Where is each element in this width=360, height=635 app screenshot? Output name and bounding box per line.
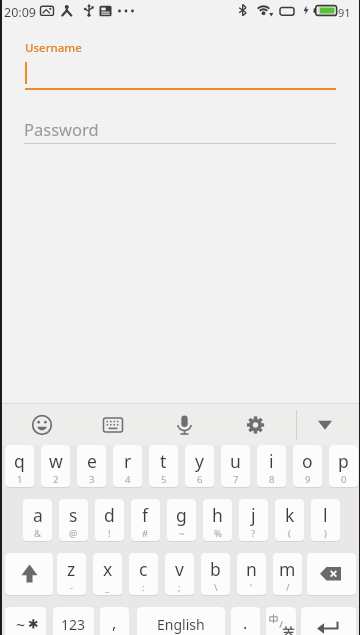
staticText: 8: [269, 473, 275, 486]
staticText: w: [49, 449, 63, 473]
button[interactable]: g: [167, 499, 196, 542]
staticText: ,: [112, 612, 117, 634]
button[interactable]: b: [201, 553, 230, 596]
staticText: ?: [251, 527, 256, 540]
staticText: 91: [338, 5, 351, 20]
staticText: 3: [89, 473, 95, 486]
staticText: b: [210, 557, 221, 581]
staticText: (: [288, 527, 291, 540]
staticText: v: [175, 557, 184, 581]
staticText: r: [124, 449, 132, 473]
staticText: q: [14, 449, 25, 473]
button[interactable]: [307, 553, 356, 596]
staticText: l: [323, 503, 328, 527]
staticText: g: [176, 503, 187, 527]
button[interactable]: 123: [53, 607, 94, 635]
button[interactable]: x: [93, 553, 122, 596]
staticText: n: [246, 557, 257, 581]
button[interactable]: o: [293, 445, 322, 488]
button[interactable]: [5, 553, 53, 596]
button[interactable]: f: [131, 499, 160, 542]
staticText: #: [142, 527, 149, 540]
staticText: f: [142, 503, 149, 527]
staticText: c: [139, 557, 148, 581]
staticText: 0: [341, 473, 347, 486]
staticText: Password: [24, 118, 99, 140]
staticText: ): [324, 527, 327, 540]
button[interactable]: English: [137, 607, 225, 635]
staticText: ': [250, 581, 253, 594]
button[interactable]: .: [231, 607, 260, 635]
button[interactable]: [166, 407, 202, 443]
staticText: 20:09: [4, 4, 36, 21]
staticText: \: [214, 581, 218, 594]
staticText: ;: [178, 581, 181, 594]
staticText: 6: [197, 473, 203, 486]
button[interactable]: a: [23, 499, 52, 542]
staticText: z: [67, 557, 76, 581]
button[interactable]: c: [129, 553, 158, 596]
staticText: j: [251, 503, 256, 527]
button[interactable]: r: [113, 445, 142, 488]
button[interactable]: [301, 607, 356, 635]
staticText: &: [34, 527, 41, 540]
button[interactable]: y: [185, 445, 214, 488]
staticText: s: [69, 503, 78, 527]
staticText: -: [70, 581, 74, 594]
staticText: English: [157, 615, 205, 634]
staticText: d: [104, 503, 115, 527]
staticText: i: [269, 449, 274, 473]
staticText: 4: [125, 473, 131, 486]
staticText: 9: [305, 473, 311, 486]
staticText: 5: [161, 473, 167, 486]
button[interactable]: m: [273, 553, 302, 596]
button[interactable]: w: [41, 445, 70, 488]
button[interactable]: [95, 407, 131, 443]
button[interactable]: d: [95, 499, 124, 542]
button[interactable]: ~: [5, 607, 46, 635]
staticText: :: [142, 581, 145, 594]
button[interactable]: ,: [100, 607, 129, 635]
button[interactable]: j: [239, 499, 268, 542]
button[interactable]: [236, 407, 272, 443]
staticText: k: [285, 503, 295, 527]
button[interactable]: v: [165, 553, 194, 596]
staticText: /: [286, 581, 290, 594]
staticText: a: [33, 503, 43, 527]
button[interactable]: h: [203, 499, 232, 542]
staticText: !: [108, 527, 111, 540]
staticText: u: [230, 449, 241, 473]
button[interactable]: [0, 105, 360, 150]
button[interactable]: i: [257, 445, 286, 488]
button[interactable]: u: [221, 445, 250, 488]
staticText: x: [103, 557, 113, 581]
button[interactable]: p: [329, 445, 358, 488]
staticText: 123: [61, 615, 86, 634]
staticText: m: [279, 557, 296, 581]
staticText: %: [214, 527, 222, 540]
button[interactable]: n: [237, 553, 266, 596]
staticText: Username: [25, 40, 82, 56]
staticText: o: [302, 449, 313, 473]
staticText: ~: [179, 527, 185, 540]
button[interactable]: [266, 607, 296, 635]
staticText: y: [195, 449, 204, 473]
button[interactable]: [307, 407, 343, 443]
button[interactable]: q: [5, 445, 34, 488]
staticText: _: [105, 581, 110, 594]
staticText: ~: [16, 614, 26, 635]
button[interactable]: l: [311, 499, 340, 542]
staticText: @: [69, 527, 78, 540]
button[interactable]: s: [59, 499, 88, 542]
button[interactable]: [24, 407, 60, 443]
button[interactable]: k: [275, 499, 304, 542]
staticText: .: [243, 612, 248, 634]
staticText: h: [212, 503, 223, 527]
staticText: t: [160, 449, 167, 473]
staticText: p: [338, 449, 349, 473]
button[interactable]: t: [149, 445, 178, 488]
staticText: e: [87, 449, 97, 473]
button[interactable]: e: [77, 445, 106, 488]
button[interactable]: [0, 30, 360, 100]
button[interactable]: z: [57, 553, 86, 596]
